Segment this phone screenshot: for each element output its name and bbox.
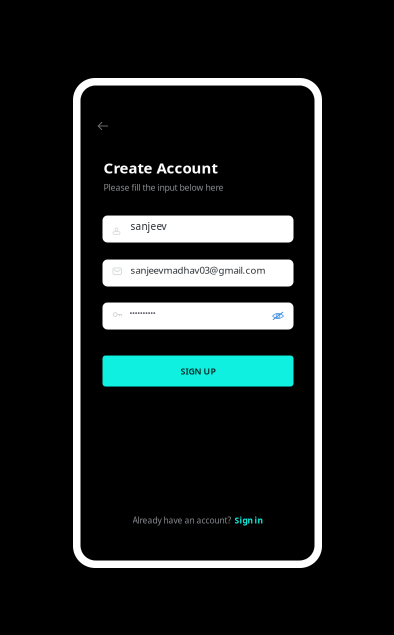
staticText: sanjeevmadhav03@gmail.com bbox=[130, 263, 265, 277]
staticText: Please fill the input below here bbox=[103, 181, 223, 193]
button[interactable]: Show password bbox=[271, 309, 285, 322]
staticText: Sign in bbox=[234, 514, 262, 526]
button[interactable]: Back bbox=[90, 114, 116, 138]
staticText: Already have an account? bbox=[132, 514, 231, 526]
staticText: SIGN UP bbox=[180, 365, 215, 377]
button[interactable]: SIGN UP bbox=[102, 355, 293, 386]
button[interactable]: Sign in bbox=[234, 514, 262, 526]
staticText: Create Account bbox=[103, 157, 217, 178]
staticText: sanjeev bbox=[130, 219, 166, 233]
